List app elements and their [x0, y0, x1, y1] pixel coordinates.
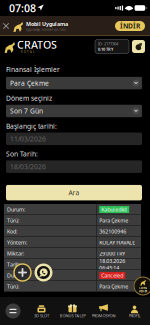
- staticText: Miktar:: [7, 250, 24, 257]
- staticText: Ara: [68, 188, 79, 197]
- staticText: Başlangıç tarihi:: [6, 122, 57, 131]
- staticText: 11/03/2026: [10, 134, 46, 143]
- button[interactable]: Canlı Destek: [133, 276, 150, 296]
- staticText: PROFİL: [128, 313, 140, 318]
- staticText: · R O Y A L ·: [19, 50, 36, 54]
- button[interactable]: 18/03/2026: [6, 160, 142, 173]
- staticText: PROMOSYON: [91, 313, 115, 318]
- staticText: 3D SLOT: [34, 313, 49, 318]
- staticText: DESTEK: [138, 289, 147, 293]
- button[interactable]: 11/03/2026: [6, 133, 142, 145]
- staticText: Son 7 Gün: [10, 106, 43, 115]
- staticText: Para Çekme: [10, 79, 49, 88]
- staticText: İNDİR: [120, 22, 140, 30]
- button[interactable]: Ara: [6, 185, 142, 200]
- staticText: ID: 2177304: [98, 41, 118, 46]
- staticText: Dönem seçiniz: [6, 94, 52, 103]
- staticText: 18.03.2026 06:45:14: [99, 257, 125, 272]
- staticText: Yöntem:: [7, 239, 27, 246]
- staticText: Para Çekme: [99, 283, 128, 290]
- staticText: CANLI: [139, 286, 147, 289]
- staticText: 07:08: [9, 1, 36, 15]
- button[interactable]: 3D SLOT: [26, 297, 57, 325]
- staticText: Türü:: [7, 283, 19, 290]
- staticText: 29.000 TRY: [99, 250, 125, 257]
- staticText: KOLAY HAVALE: [99, 239, 135, 246]
- staticText: Finansal İşlemler: [6, 65, 60, 74]
- button[interactable]: BONUS TALEP: [57, 297, 88, 325]
- staticText: Durum:: [7, 272, 25, 279]
- button[interactable]: Son 7 Gün: [6, 105, 142, 117]
- staticText: Türü:: [7, 217, 19, 224]
- button[interactable]: Yenile: [132, 40, 145, 53]
- staticText: 362100946: [99, 228, 126, 235]
- staticText: CRATOS: [17, 38, 57, 52]
- staticText: BONUS TALEP: [59, 313, 85, 318]
- button[interactable]: İNDİR: [115, 21, 145, 31]
- button[interactable]: WhatsApp: [34, 263, 53, 282]
- staticText: Uygulamayı indirmek için tıkla: [26, 28, 65, 31]
- staticText: Son Tarih:: [6, 150, 38, 158]
- staticText: Kabul edildi: [101, 206, 127, 213]
- staticText: Para Çekme: [99, 217, 128, 224]
- staticText: Mobil Uygulama: [26, 20, 68, 27]
- button[interactable]: PROMOSYON: [88, 297, 119, 325]
- button[interactable]: Kapat: [0, 18, 12, 34]
- button[interactable]: Yeni işlem: [13, 263, 32, 282]
- button[interactable]: PROFİL: [119, 297, 150, 325]
- staticText: 0.10 TRY: [98, 47, 113, 52]
- staticText: Kod:: [7, 228, 17, 235]
- staticText: 18/03/2026: [10, 162, 46, 171]
- staticText: Canceled: [101, 272, 123, 279]
- staticText: Durum:: [7, 206, 25, 213]
- staticText: Tarih:: [7, 261, 20, 268]
- button[interactable]: Menü: [0, 297, 26, 325]
- button[interactable]: Para Çekme: [6, 77, 142, 89]
